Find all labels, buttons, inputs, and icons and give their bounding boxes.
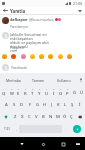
button[interactable]: Recent apps [58,139,68,149]
button[interactable]: Back [2,7,9,14]
button[interactable]: Home [38,139,48,149]
button[interactable]: Back [17,139,27,149]
button[interactable]: X [19,111,26,123]
staticText: dafkapier [10,17,28,22]
button[interactable]: J [48,99,55,111]
button[interactable]: Yanıtlarak [2,64,83,71]
staticText: Pazartesi [10,46,24,50]
staticText: 0 [67,88,69,91]
button[interactable]: Voice input [76,73,85,87]
button[interactable]: Ö [61,111,68,123]
button[interactable]: Backspace [75,111,85,123]
button[interactable]: 2 [8,87,15,99]
button[interactable]: V [33,111,40,123]
staticText: D [20,102,24,108]
button[interactable]: G [34,99,41,111]
staticText: Ü [80,90,84,96]
staticText: F [29,102,32,108]
button[interactable]: Kullanıcı [51,73,76,87]
staticText: 5 [32,88,34,91]
button[interactable]: Emoji reaction [21,54,26,59]
staticText: Ğ [73,90,77,96]
button[interactable]: C [26,111,33,123]
staticText: Y [38,91,41,97]
staticText: K [57,102,60,108]
button[interactable]: Emoji reaction [48,54,53,59]
staticText: Z [14,114,17,120]
button[interactable]: K [55,99,62,111]
staticText: Ş [71,102,74,108]
staticText: Q [2,91,6,97]
button[interactable]: 8 [50,87,57,99]
button[interactable]: İ [76,99,83,111]
button[interactable]: Emoji reaction [67,54,72,59]
button[interactable]: 3 [15,87,22,99]
staticText: C [28,114,31,120]
button[interactable]: A [2,99,10,111]
staticText: 6 [39,88,41,91]
button[interactable]: Ş [69,99,76,111]
button[interactable]: Merhaba [0,73,26,87]
staticText: İ [79,102,81,108]
staticText: U [45,91,49,97]
staticText: 7 [46,88,48,91]
button[interactable]: Reply audience [76,7,83,14]
staticText: ?123 [4,127,10,131]
staticText: R [24,91,27,97]
button[interactable]: ?123 [0,123,13,135]
button[interactable]: B [40,111,47,123]
staticText: Ç [70,114,73,120]
button[interactable]: 0 [64,87,71,99]
button[interactable]: Emoji reaction [58,54,63,59]
staticText: 2 [11,88,13,91]
staticText: P [66,91,69,97]
staticText: Yanıtlarak [11,65,28,70]
button[interactable]: S [10,99,18,111]
staticText: S [13,102,16,108]
staticText: W [10,91,14,97]
button[interactable]: M [54,111,61,123]
button[interactable]: Comma [13,123,19,135]
staticText: 4 [25,88,27,91]
staticText: 8 [53,88,55,91]
staticText: L [64,102,67,108]
staticText: T [31,91,34,97]
staticText: G [36,102,40,108]
button[interactable]: Change keyboard [73,139,83,149]
button[interactable]: Send [73,125,81,133]
button[interactable]: Emoji reaction [39,54,44,59]
button[interactable]: N [47,111,54,123]
staticText: J [51,102,53,108]
button[interactable]: Ğ [71,87,78,99]
button[interactable]: Shift [0,111,11,123]
button[interactable]: 4 [22,87,29,99]
staticText: N [49,114,53,120]
staticText: B [42,114,45,120]
button[interactable]: Ü [78,87,85,99]
staticText: V [35,114,38,120]
button[interactable]: Tamam [26,73,51,87]
button[interactable]: Z [11,111,19,123]
staticText: Merhaba [6,78,21,83]
button[interactable]: 7 [43,87,50,99]
button[interactable]: L [62,99,69,111]
button[interactable]: 5 [29,87,36,99]
button[interactable]: Emoji reaction [11,54,16,59]
button[interactable]: F [26,99,34,111]
button[interactable]: D [18,99,26,111]
button[interactable]: H [41,99,48,111]
button[interactable]: 6 [36,87,43,99]
button[interactable]: Emoji reaction [30,54,35,59]
staticText: 9 [60,88,62,91]
button[interactable]: Emoji reaction [2,54,7,59]
button[interactable]: Ç [68,111,75,123]
staticText: A [5,102,8,108]
button[interactable]: 9 [57,87,64,99]
button[interactable]: 1 [0,87,8,99]
staticText: Tamam [32,78,45,83]
staticText: 3 [18,88,20,91]
staticText: @kusursuzluq [29,17,54,22]
staticText: H [43,102,47,108]
